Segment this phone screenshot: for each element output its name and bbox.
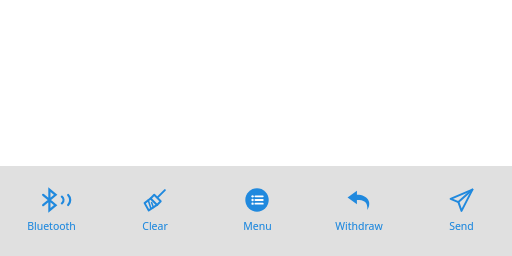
- staticText: Withdraw: [335, 219, 383, 233]
- button[interactable]: Send: [410, 166, 512, 256]
- staticText: Clear: [142, 219, 168, 233]
- button[interactable]: Bluetooth: [0, 166, 103, 256]
- staticText: Menu: [243, 219, 272, 233]
- staticText: Send: [449, 219, 474, 233]
- button[interactable]: Clear: [103, 166, 206, 256]
- staticText: Bluetooth: [27, 219, 76, 233]
- button[interactable]: Menu: [206, 166, 308, 256]
- button[interactable]: Withdraw: [308, 166, 410, 256]
